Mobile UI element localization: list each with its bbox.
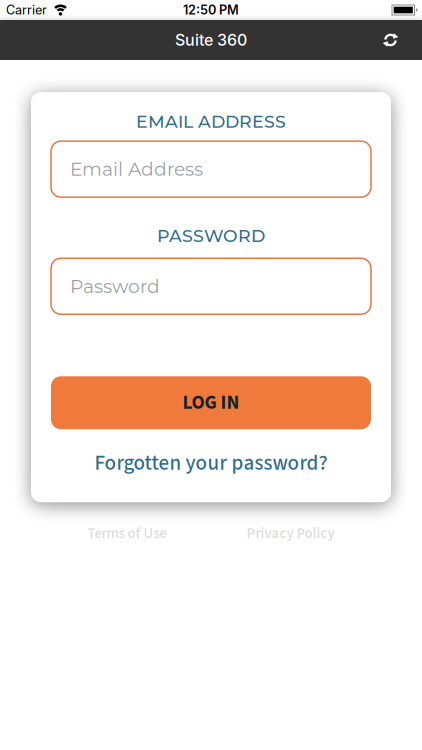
staticText: 12:50 PM	[183, 2, 239, 18]
button[interactable]: LOG IN	[51, 376, 371, 429]
staticText: LOG IN	[182, 389, 239, 416]
button[interactable]: Forgotten your password?	[94, 448, 327, 478]
button[interactable]: Terms of Use	[87, 523, 166, 544]
staticText: Email Address	[70, 158, 203, 181]
button[interactable]	[383, 33, 422, 47]
staticText: Suite 360	[175, 30, 247, 50]
button[interactable]: Password	[51, 258, 371, 314]
staticText: Forgotten your password?	[94, 448, 327, 478]
staticText: Password	[70, 275, 160, 298]
button[interactable]: Email Address	[51, 141, 371, 197]
staticText: PASSWORD	[157, 225, 265, 246]
button[interactable]: Privacy Policy	[246, 523, 334, 544]
staticText: Privacy Policy	[246, 523, 334, 544]
staticText: Carrier	[6, 2, 47, 18]
staticText: EMAIL ADDRESS	[136, 111, 286, 132]
staticText: Terms of Use	[87, 523, 166, 544]
